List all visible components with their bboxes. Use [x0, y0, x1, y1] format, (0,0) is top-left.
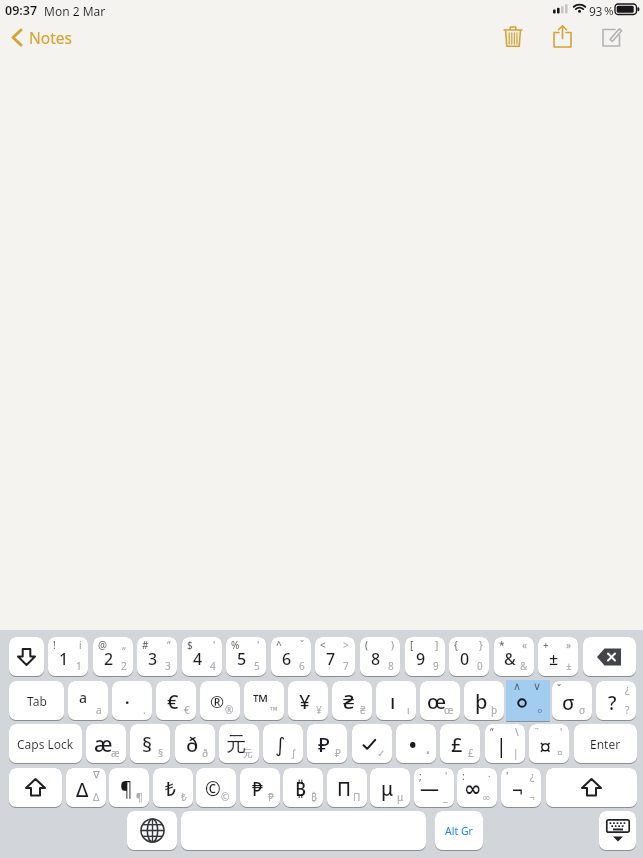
staticText: ™ [253, 688, 269, 715]
button[interactable]: $ [182, 637, 222, 677]
button[interactable]: œ [420, 681, 460, 721]
staticText: 元 [243, 747, 253, 760]
staticText: ¶ [136, 790, 143, 804]
staticText: œ [444, 703, 454, 717]
button[interactable]: Enter [574, 724, 637, 764]
button[interactable]: ð [175, 724, 215, 764]
button[interactable]: ₿ [283, 768, 323, 808]
button[interactable] [598, 25, 626, 50]
button[interactable]: @ [93, 637, 133, 677]
staticText: ₽ [318, 731, 330, 758]
button[interactable]: Alt Gr [435, 811, 483, 851]
button[interactable] [181, 811, 426, 851]
button[interactable]: ! [48, 637, 88, 677]
staticText: μ [381, 776, 394, 802]
button[interactable]: ¥ [288, 681, 328, 721]
button[interactable] [549, 23, 577, 50]
button[interactable]: ' [501, 768, 541, 808]
button[interactable]: ✓ [352, 724, 392, 764]
button[interactable]: < [315, 637, 355, 677]
staticText: œ [427, 688, 447, 715]
staticText: _ [443, 790, 448, 804]
staticText: 元 [226, 732, 246, 757]
button[interactable] [9, 768, 62, 808]
staticText: 8 [388, 659, 394, 673]
button[interactable]: % [226, 637, 266, 677]
button[interactable]: # [137, 637, 177, 677]
button[interactable]: ₱ [240, 768, 280, 808]
staticText: 9 [416, 648, 426, 670]
staticText: ˇ [557, 682, 562, 696]
button[interactable]: μ [370, 768, 410, 808]
button[interactable]: ¿ [596, 681, 636, 721]
button[interactable]: ˇ [552, 681, 592, 721]
button[interactable] [546, 768, 637, 808]
button[interactable] [9, 637, 44, 677]
staticText: ® [225, 703, 234, 717]
staticText: ¤ [539, 731, 552, 761]
button[interactable]: 元 [219, 724, 259, 764]
button[interactable]: ∧ [506, 680, 550, 722]
button[interactable]: ₺ [153, 768, 193, 808]
staticText: 4 [210, 659, 216, 673]
staticText: ₴ [360, 703, 366, 717]
button[interactable]: . [112, 681, 152, 721]
button[interactable]: æ [86, 724, 126, 764]
button[interactable]: ı [376, 681, 416, 721]
button[interactable]: Π [327, 768, 367, 808]
button[interactable]: * [494, 637, 534, 677]
button[interactable] [500, 24, 527, 50]
button[interactable]: [ [405, 637, 445, 677]
button[interactable] [127, 811, 177, 851]
staticText: » [566, 638, 572, 652]
button[interactable]: ₽ [307, 724, 347, 764]
button[interactable]: Tab [9, 681, 64, 721]
staticText: ' [445, 769, 448, 783]
button[interactable]: Caps Lock [9, 724, 82, 764]
button[interactable]: ® [200, 681, 240, 721]
staticText: { [454, 638, 458, 652]
button[interactable]: £ [440, 724, 480, 764]
button[interactable] [583, 637, 636, 677]
staticText: Notes [29, 27, 72, 48]
button[interactable]: þ [464, 681, 504, 721]
staticText: ¤ [557, 746, 563, 760]
button[interactable]: ∇ [66, 768, 106, 808]
staticText: æ [94, 730, 113, 759]
button[interactable]: ₴ [332, 681, 372, 721]
staticText: ₱ [252, 776, 263, 802]
staticText: Mon 2 Mar [44, 3, 106, 19]
staticText: ₴ [343, 688, 355, 715]
staticText: | [496, 733, 507, 759]
button[interactable]: ^ [271, 637, 311, 677]
staticText: σ [579, 703, 586, 717]
button[interactable]: © [196, 768, 236, 808]
staticText: £ [468, 746, 474, 760]
staticText: Enter [590, 736, 621, 752]
button[interactable]: ™ [244, 681, 284, 721]
button[interactable]: a [68, 681, 108, 721]
staticText: æ [111, 746, 120, 760]
staticText: ¬ [529, 790, 535, 804]
button[interactable]: § [130, 724, 170, 764]
button[interactable]: Notes [8, 26, 88, 50]
staticText: 3 [165, 659, 171, 673]
button[interactable]: ¨ [529, 724, 569, 764]
button[interactable]: € [156, 681, 196, 721]
staticText: + [543, 638, 549, 652]
button[interactable]: • [396, 724, 436, 764]
button[interactable]: : [457, 768, 497, 808]
button[interactable]: { [449, 637, 489, 677]
staticText: . [125, 687, 130, 709]
button[interactable] [599, 811, 636, 851]
button[interactable]: ∫ [263, 724, 303, 764]
staticText: * [499, 638, 505, 652]
staticText: ( [365, 638, 368, 652]
staticText: % [604, 3, 614, 19]
button[interactable]: ¶ [109, 768, 149, 808]
button[interactable]: + [538, 637, 578, 677]
button[interactable]: “ [485, 724, 525, 764]
button[interactable]: ( [360, 637, 400, 677]
staticText: « [522, 638, 528, 652]
button[interactable]: ; [414, 768, 454, 808]
